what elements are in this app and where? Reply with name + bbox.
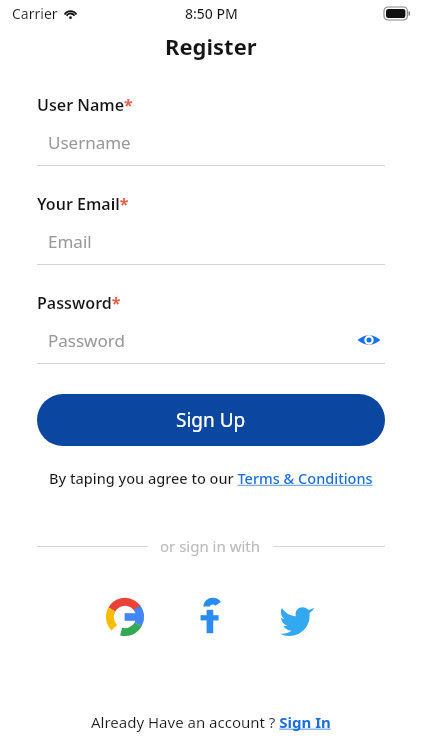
staticText: Your Email*: [37, 193, 129, 215]
staticText: Carrier: [12, 4, 58, 23]
button[interactable]: Sign in with Google: [102, 594, 148, 640]
staticText: 8:50 PM: [185, 4, 238, 23]
staticText: User Name*: [37, 94, 133, 116]
staticText: Email: [48, 230, 92, 253]
button[interactable]: Username: [37, 127, 385, 157]
staticText: Already Have an account ? Sign In: [91, 712, 331, 732]
button[interactable]: Email: [37, 226, 385, 256]
button[interactable]: Already Have an account ? Sign In: [0, 712, 422, 732]
staticText: Password*: [37, 292, 121, 314]
button[interactable]: Show password: [355, 326, 383, 354]
button[interactable]: Sign Up: [37, 394, 385, 446]
button[interactable]: Sign in with Facebook: [188, 594, 234, 640]
button[interactable]: Sign in with Twitter: [274, 594, 320, 640]
button[interactable]: By taping you agree to our Terms & Condi…: [37, 468, 385, 488]
staticText: or sign in with: [160, 536, 261, 556]
staticText: Register: [165, 31, 257, 61]
staticText: Sign Up: [176, 407, 246, 433]
staticText: By taping you agree to our Terms & Condi…: [49, 468, 373, 488]
button[interactable]: Password: [37, 325, 385, 355]
staticText: Username: [48, 131, 131, 154]
staticText: Password: [48, 329, 125, 352]
